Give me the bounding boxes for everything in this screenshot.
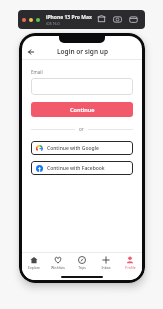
button[interactable]: Continue with Facebook bbox=[31, 161, 133, 175]
staticText: Wishlists bbox=[51, 265, 65, 270]
button[interactable]: Profile bbox=[118, 253, 142, 273]
button[interactable]: Record bbox=[128, 14, 139, 25]
staticText: iOS 16.0 bbox=[46, 21, 60, 26]
button[interactable] bbox=[31, 78, 133, 95]
button[interactable]: Trips bbox=[70, 253, 94, 273]
staticText: Explore bbox=[28, 265, 40, 270]
staticText: Profile bbox=[125, 265, 136, 270]
button[interactable]: Explore bbox=[22, 253, 46, 273]
staticText: iPhone 13 Pro Max bbox=[46, 14, 92, 21]
staticText: Continue with Facebook bbox=[47, 165, 105, 172]
button[interactable]: Inbox bbox=[94, 253, 118, 273]
staticText: Continue bbox=[70, 106, 95, 113]
button[interactable]: Back bbox=[25, 46, 36, 57]
button[interactable]: Continue bbox=[31, 102, 133, 117]
staticText: Inbox bbox=[101, 265, 111, 270]
staticText: Email bbox=[31, 69, 43, 75]
staticText: Trips bbox=[78, 265, 86, 270]
button[interactable]: Screenshot bbox=[112, 14, 123, 25]
button[interactable]: Home bbox=[96, 14, 107, 25]
button[interactable]: Continue with Google bbox=[31, 141, 133, 155]
staticText: Login or sign up bbox=[57, 47, 108, 56]
staticText: or bbox=[79, 126, 84, 132]
staticText: Continue with Google bbox=[47, 145, 99, 152]
button[interactable]: Wishlists bbox=[46, 253, 70, 273]
